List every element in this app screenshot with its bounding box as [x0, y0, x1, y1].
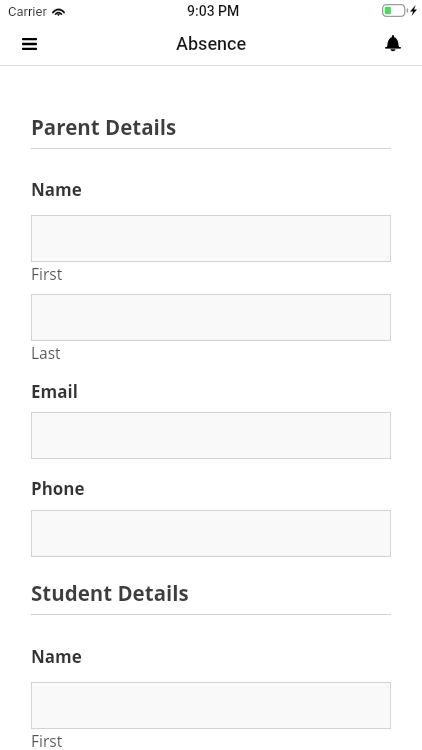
staticText: Carrier — [8, 4, 47, 19]
button[interactable] — [31, 682, 391, 729]
staticText: Parent Details — [31, 113, 177, 141]
staticText: First — [31, 263, 63, 284]
staticText: Name — [31, 645, 82, 668]
staticText: Absence — [176, 33, 247, 54]
staticText: Last — [31, 342, 61, 363]
staticText: Email — [31, 380, 78, 403]
staticText: First — [31, 730, 63, 750]
button[interactable] — [31, 294, 391, 341]
staticText: Student Details — [31, 579, 189, 607]
button[interactable]: Notifications — [371, 22, 415, 65]
button[interactable] — [31, 510, 391, 557]
button[interactable]: Open navigation menu — [7, 22, 51, 65]
staticText: Name — [31, 178, 82, 201]
button[interactable] — [31, 412, 391, 459]
button[interactable] — [31, 215, 391, 262]
staticText: 9:03 PM — [187, 3, 240, 19]
staticText: Phone — [31, 477, 85, 500]
